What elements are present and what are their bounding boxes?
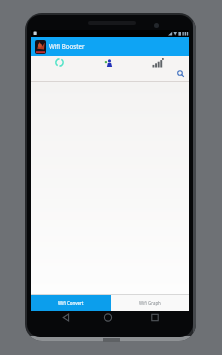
button[interactable] xyxy=(150,56,165,71)
button[interactable]: Wifi Graph xyxy=(110,295,189,311)
staticText: Wifi Convert xyxy=(58,300,84,306)
button[interactable] xyxy=(58,310,74,325)
button[interactable] xyxy=(174,67,188,81)
button[interactable] xyxy=(52,55,67,70)
staticText: Wifi Booster xyxy=(49,42,85,50)
button[interactable] xyxy=(100,310,116,325)
button[interactable]: Wifi Convert xyxy=(31,295,111,311)
button[interactable] xyxy=(101,56,116,71)
button[interactable] xyxy=(147,310,163,325)
staticText: Wifi Graph xyxy=(139,300,161,306)
